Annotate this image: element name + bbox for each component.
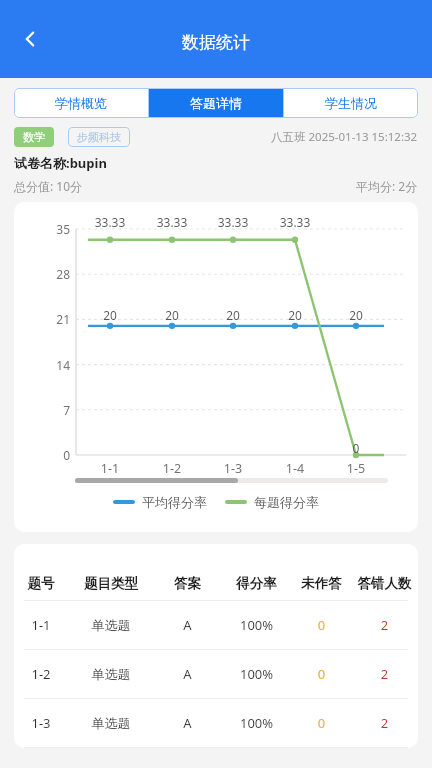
staticText: 1-2 [14,665,68,683]
staticText: 1-3 [215,460,251,477]
staticText: 试卷名称:bupin [14,154,107,172]
staticText: 得分率 [221,575,292,592]
button[interactable]: Back [8,17,52,61]
staticText: A [154,714,221,732]
staticText: 1-1 [92,460,128,477]
staticText: 0 [346,440,366,456]
staticText: A [154,665,221,683]
staticText: 2 [351,714,418,732]
staticText: 总分值: 10分 [14,178,83,194]
staticText: 20 [221,307,245,323]
button[interactable]: 答题详情 [149,88,283,118]
staticText: 1-4 [277,460,313,477]
staticText: 1-5 [338,460,374,477]
button[interactable]: 1-2 [14,650,418,698]
staticText: 20 [160,307,184,323]
staticText: 1-2 [154,460,190,477]
staticText: 未作答 [292,575,351,592]
staticText: 平均分: 2分 [356,178,418,194]
staticText: 0 [292,714,351,732]
staticText: 单选题 [68,666,154,682]
staticText: 数据统计 [182,32,250,53]
staticText: 20 [283,307,307,323]
staticText: 33.33 [151,214,193,230]
staticText: 单选题 [68,617,154,633]
staticText: 每题得分率 [254,494,319,510]
staticText: 0 [44,447,70,463]
staticText: 2 [351,616,418,634]
staticText: 数学 [23,130,45,144]
staticText: A [154,616,221,634]
staticText: 答题详情 [190,95,242,111]
staticText: 平均得分率 [142,494,207,510]
staticText: 2 [351,665,418,683]
button[interactable]: 学情概览 [14,88,148,118]
staticText: 题号 [14,575,68,592]
button[interactable]: 1-3 [14,699,418,747]
staticText: 100% [221,665,292,683]
staticText: 33.33 [212,214,254,230]
staticText: 步频科技 [77,130,121,144]
staticText: 题目类型 [68,575,154,592]
staticText: 答错人数 [351,575,418,592]
staticText: 答案 [154,575,221,592]
staticText: 1-3 [14,714,68,732]
staticText: 0 [292,665,351,683]
button[interactable]: 1-1 [14,601,418,649]
staticText: 八五班 2025-01-13 15:12:32 [271,129,418,145]
staticText: 100% [221,714,292,732]
staticText: 学情概览 [55,95,107,111]
staticText: 33.33 [274,214,316,230]
staticText: 20 [98,307,122,323]
staticText: 100% [221,616,292,634]
staticText: 0 [292,616,351,634]
staticText: 35 [44,221,70,237]
staticText: 7 [44,402,70,418]
button[interactable]: 学生情况 [284,88,418,118]
staticText: 单选题 [68,715,154,731]
staticText: 1-1 [14,616,68,634]
staticText: 20 [344,307,368,323]
staticText: 14 [44,357,70,373]
staticText: 21 [44,311,70,327]
button[interactable]: 题号 [14,566,418,600]
staticText: 28 [44,266,70,282]
staticText: 学生情况 [325,95,377,111]
staticText: 33.33 [89,214,131,230]
